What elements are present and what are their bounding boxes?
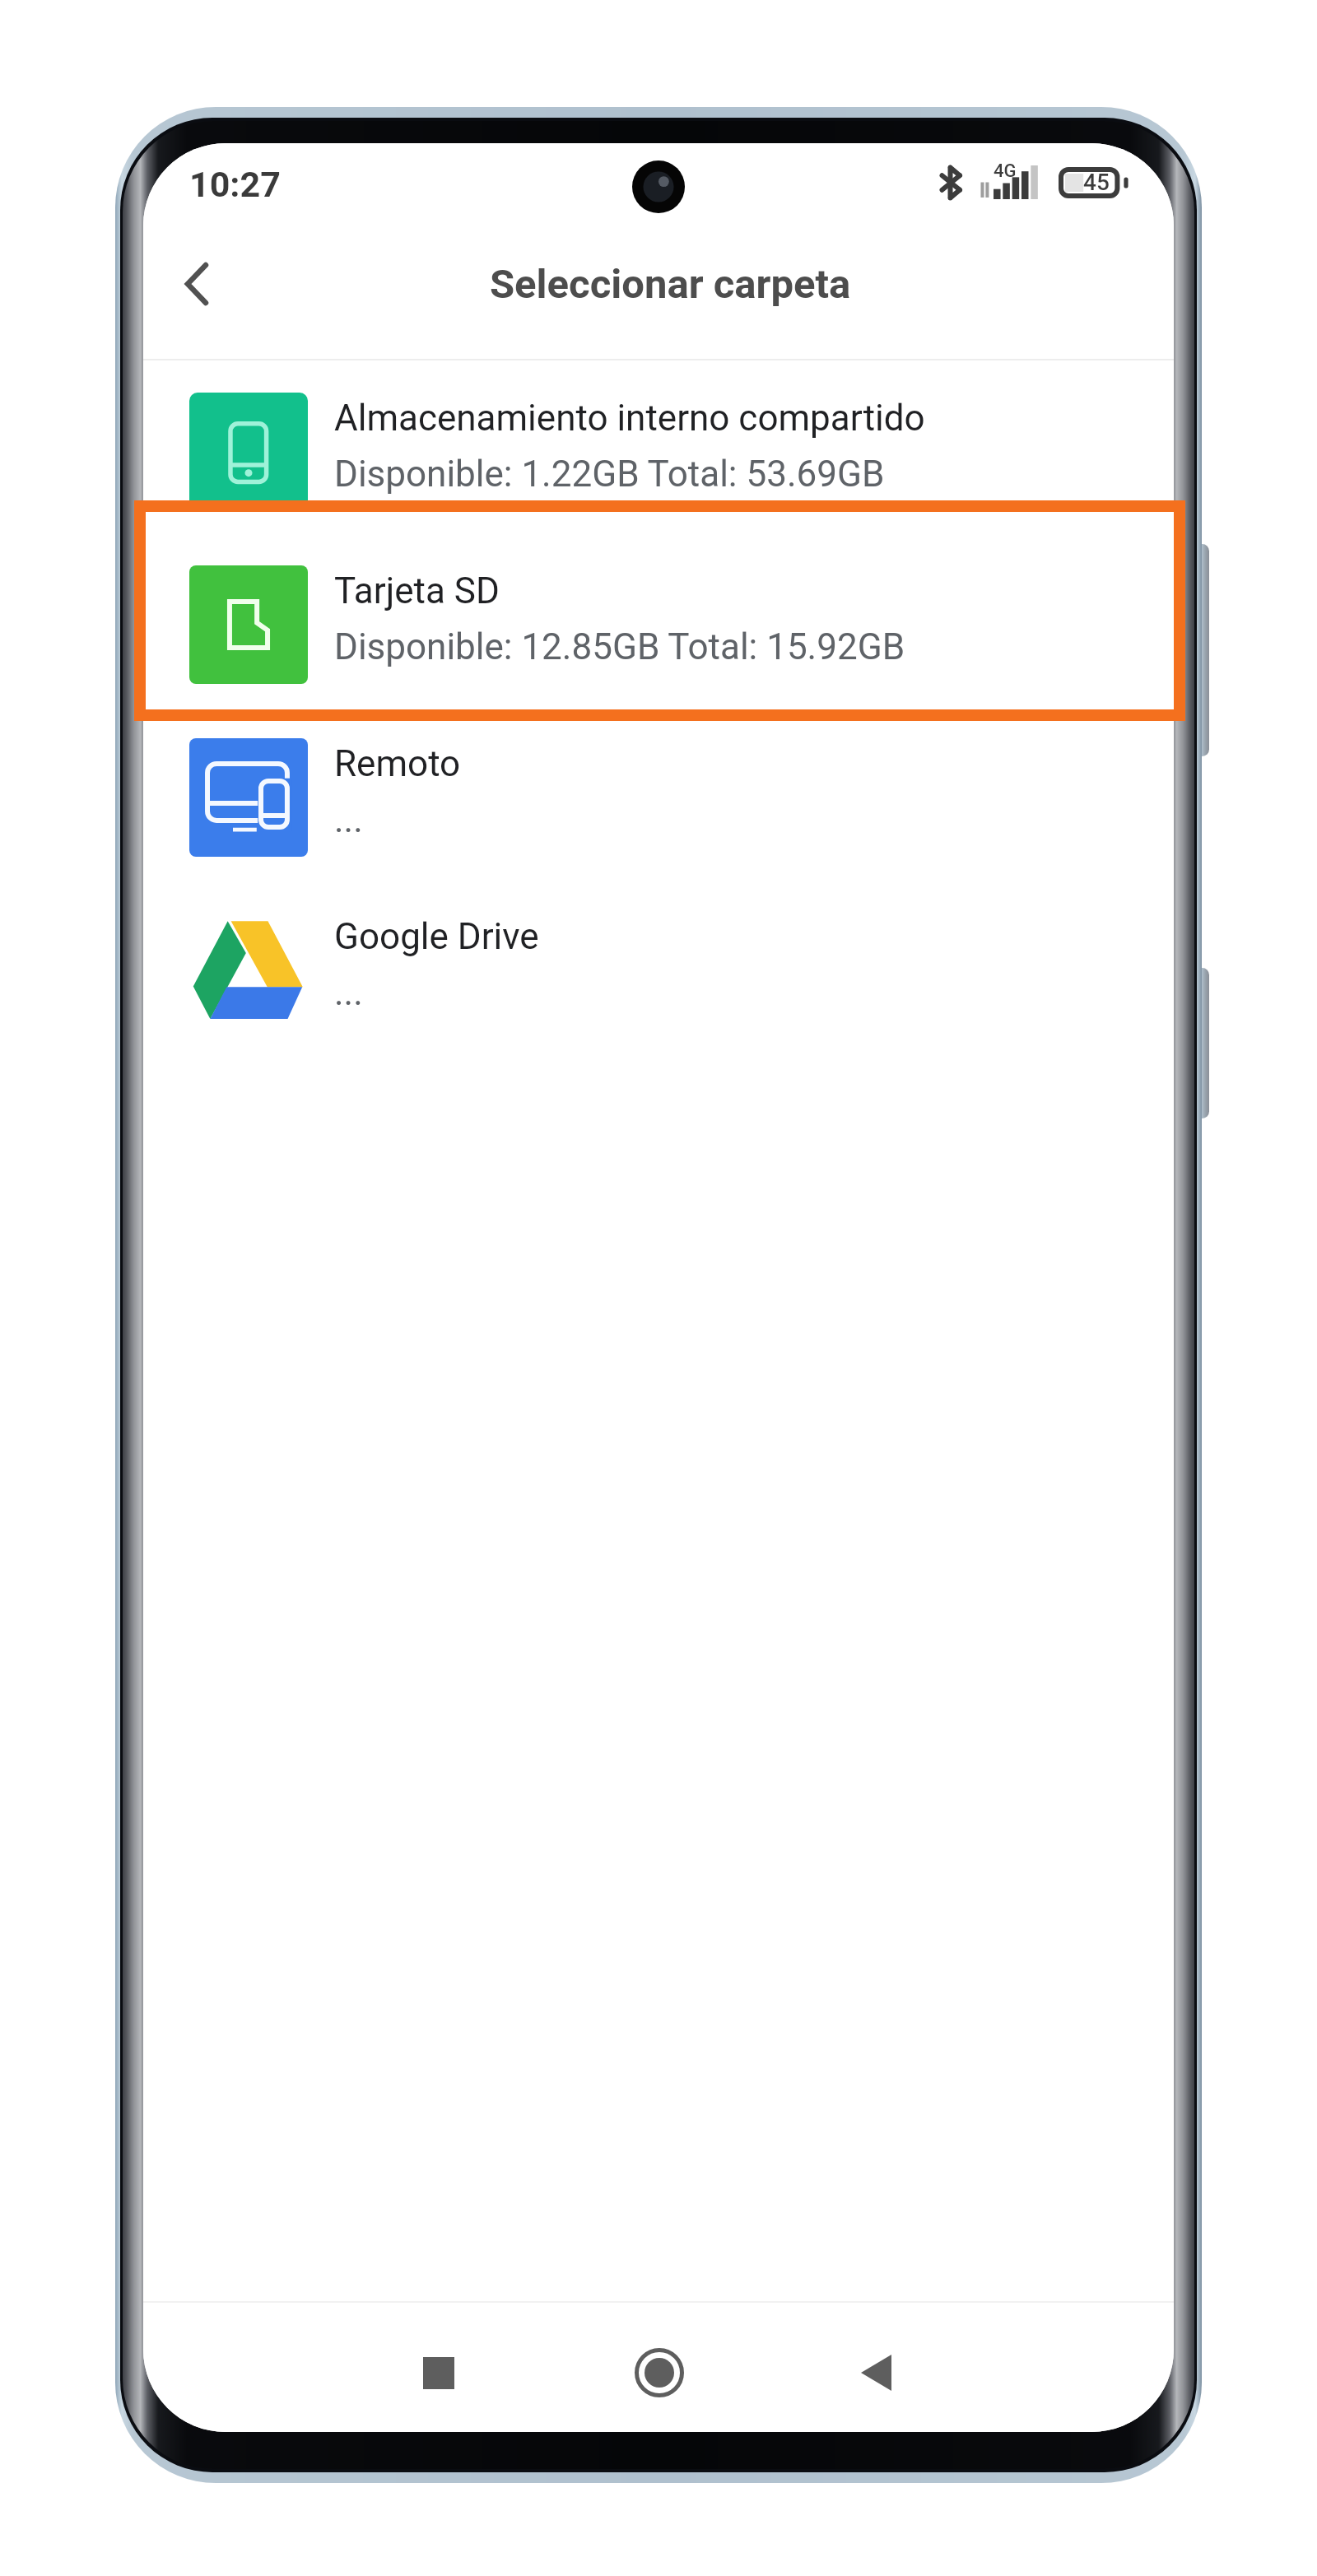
staticText: 4G: [994, 160, 1017, 182]
button[interactable]: Tarjeta SD: [143, 538, 1174, 711]
staticText: Almacenamiento interno compartido: [334, 397, 925, 439]
staticText: Tarjeta SD: [334, 570, 500, 612]
button[interactable]: Back: [144, 231, 249, 337]
staticText: Google Drive: [334, 915, 539, 958]
staticText: ...: [334, 971, 363, 1014]
button[interactable]: Back: [818, 2315, 933, 2430]
staticText: 45: [1083, 169, 1110, 196]
staticText: ...: [334, 798, 363, 841]
button[interactable]: Almacenamiento interno compartido: [143, 365, 1174, 538]
button[interactable]: Home: [602, 2315, 717, 2430]
staticText: Seleccionar carpeta: [490, 261, 851, 308]
button[interactable]: Google Drive: [143, 884, 1174, 1057]
button[interactable]: Remoto: [143, 711, 1174, 884]
staticText: 10:27: [189, 164, 281, 205]
staticText: Remoto: [334, 742, 461, 785]
staticText: Disponible: 12.85GB Total: 15.92GB: [334, 625, 905, 668]
button[interactable]: Recent apps: [381, 2315, 496, 2430]
staticText: Disponible: 1.22GB Total: 53.69GB: [334, 453, 885, 495]
